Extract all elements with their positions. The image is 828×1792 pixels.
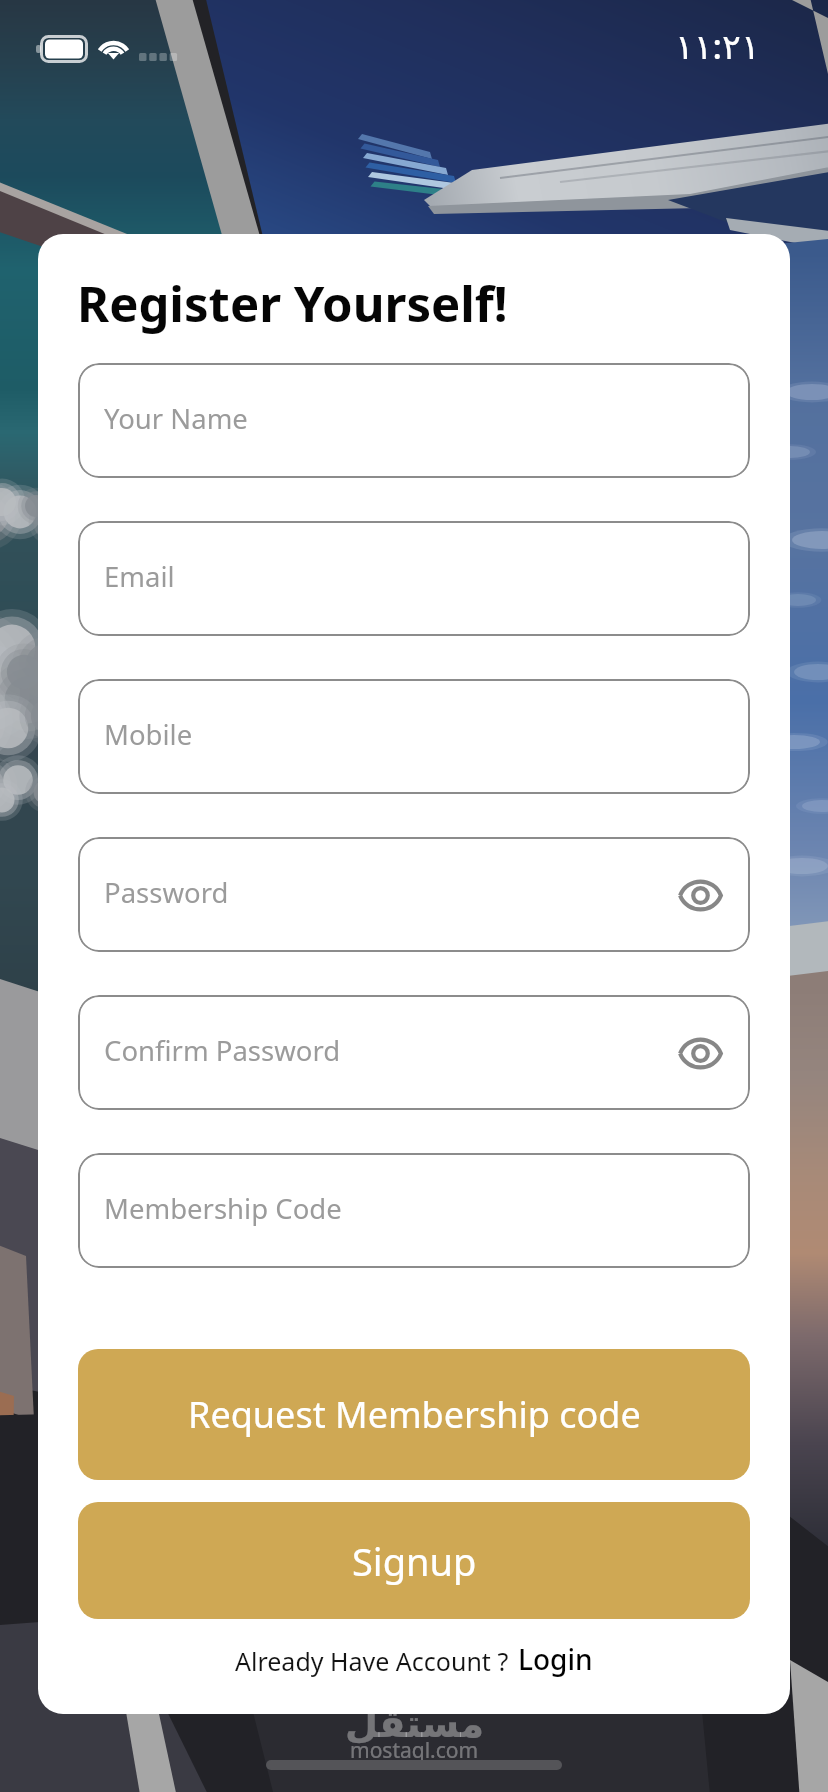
button[interactable]: Email <box>78 521 750 636</box>
button[interactable]: Membership Code <box>78 1153 750 1268</box>
staticText: Request Membership code <box>188 1390 641 1439</box>
staticText: mostaql.com <box>350 1736 479 1765</box>
staticText: Confirm Password <box>104 1032 341 1069</box>
button[interactable]: Show password <box>670 865 730 925</box>
button[interactable]: Signup <box>78 1502 750 1619</box>
button[interactable]: Mobile <box>78 679 750 794</box>
staticText: Register Yourself! <box>77 270 508 337</box>
staticText: Email <box>104 558 175 595</box>
staticText: Signup <box>352 1535 477 1587</box>
button[interactable]: Show password <box>670 1023 730 1083</box>
button[interactable]: Your Name <box>78 363 750 478</box>
staticText: Already Have Account ? <box>235 1644 509 1678</box>
button[interactable]: Password <box>78 837 750 952</box>
staticText: مستقل <box>345 1702 484 1746</box>
button[interactable]: Request Membership code <box>78 1349 750 1480</box>
button[interactable]: Login <box>518 1640 593 1678</box>
staticText: Login <box>518 1640 593 1678</box>
staticText: Password <box>104 874 229 911</box>
staticText: Your Name <box>104 400 248 437</box>
button[interactable]: Confirm Password <box>78 995 750 1110</box>
staticText: Membership Code <box>104 1190 342 1227</box>
staticText: Mobile <box>104 716 193 753</box>
staticText: ١١:٢١ <box>675 22 760 70</box>
